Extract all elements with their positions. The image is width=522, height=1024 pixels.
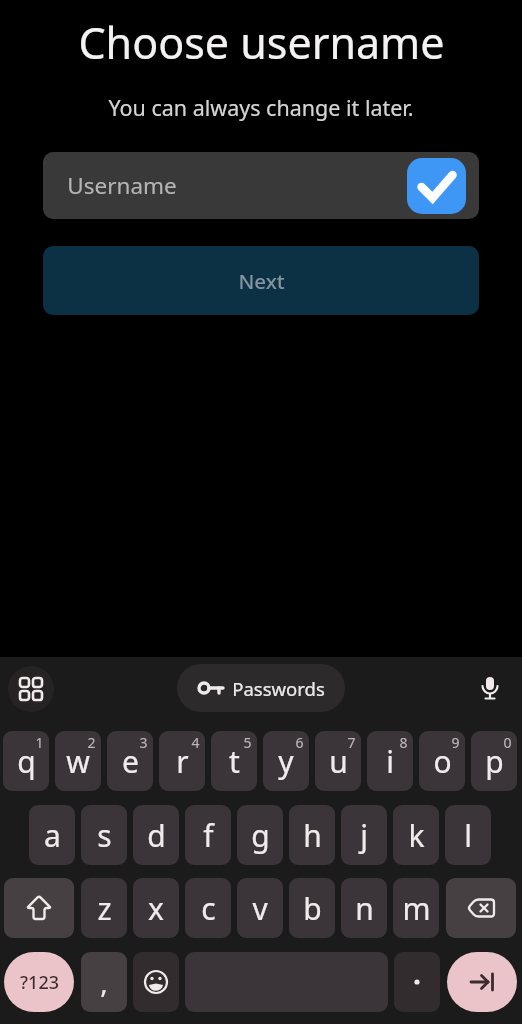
- staticText: p: [485, 741, 504, 782]
- staticText: 2: [87, 733, 96, 752]
- staticText: b: [303, 888, 322, 929]
- button[interactable]: p: [471, 731, 517, 791]
- staticText: i: [386, 741, 394, 782]
- button[interactable]: [446, 878, 516, 938]
- button[interactable]: m: [393, 878, 439, 938]
- button[interactable]: ?123: [4, 952, 74, 1012]
- staticText: l: [464, 815, 472, 856]
- staticText: w: [66, 741, 90, 782]
- button[interactable]: q: [3, 731, 49, 791]
- button[interactable]: r: [159, 731, 205, 791]
- staticText: o: [433, 741, 452, 782]
- button[interactable]: d: [133, 805, 179, 865]
- staticText: g: [251, 815, 270, 856]
- staticText: t: [229, 741, 240, 782]
- button[interactable]: w: [55, 731, 101, 791]
- button[interactable]: [470, 669, 510, 709]
- staticText: 5: [243, 733, 252, 752]
- staticText: h: [303, 815, 322, 856]
- staticText: 8: [399, 733, 408, 752]
- staticText: a: [44, 815, 61, 856]
- button[interactable]: z: [81, 878, 127, 938]
- staticText: k: [408, 815, 425, 856]
- button[interactable]: b: [289, 878, 335, 938]
- staticText: f: [203, 815, 214, 856]
- staticText: 3: [139, 733, 148, 752]
- staticText: m: [402, 888, 431, 929]
- button[interactable]: s: [81, 805, 127, 865]
- button[interactable]: f: [185, 805, 231, 865]
- button[interactable]: Username: [43, 152, 479, 219]
- button[interactable]: o: [419, 731, 465, 791]
- button[interactable]: y: [263, 731, 309, 791]
- staticText: Next: [238, 267, 285, 295]
- staticText: 6: [295, 733, 304, 752]
- staticText: c: [201, 888, 216, 929]
- staticText: You can always change it later.: [108, 93, 414, 122]
- staticText: n: [355, 888, 374, 929]
- staticText: s: [97, 815, 112, 856]
- staticText: Username: [67, 170, 177, 201]
- staticText: j: [360, 815, 368, 856]
- button[interactable]: [4, 878, 74, 938]
- button[interactable]: k: [393, 805, 439, 865]
- button[interactable]: [8, 666, 54, 712]
- button[interactable]: e: [107, 731, 153, 791]
- staticText: 7: [347, 733, 356, 752]
- staticText: y: [278, 741, 294, 782]
- staticText: 9: [451, 733, 460, 752]
- staticText: z: [97, 888, 112, 929]
- staticText: q: [17, 741, 36, 782]
- staticText: ,: [100, 963, 108, 1001]
- button[interactable]: a: [29, 805, 75, 865]
- button[interactable]: i: [367, 731, 413, 791]
- button[interactable]: u: [315, 731, 361, 791]
- staticText: Passwords: [232, 676, 325, 701]
- button[interactable]: v: [237, 878, 283, 938]
- staticText: 0: [503, 733, 512, 752]
- staticText: Choose username: [78, 13, 445, 72]
- button[interactable]: t: [211, 731, 257, 791]
- button[interactable]: [407, 158, 466, 214]
- staticText: v: [252, 888, 268, 929]
- staticText: r: [176, 741, 189, 782]
- button[interactable]: n: [341, 878, 387, 938]
- staticText: 4: [191, 733, 200, 752]
- button[interactable]: h: [289, 805, 335, 865]
- button[interactable]: [133, 952, 179, 1012]
- button[interactable]: l: [445, 805, 491, 865]
- staticText: u: [329, 741, 348, 782]
- button[interactable]: [447, 952, 517, 1012]
- button[interactable]: j: [341, 805, 387, 865]
- button[interactable]: [394, 952, 440, 1012]
- button[interactable]: Passwords: [177, 664, 345, 712]
- button[interactable]: c: [185, 878, 231, 938]
- staticText: e: [122, 741, 139, 782]
- button[interactable]: ,: [81, 952, 127, 1012]
- staticText: ?123: [20, 970, 59, 995]
- button[interactable]: x: [133, 878, 179, 938]
- button[interactable]: Next: [43, 246, 479, 315]
- staticText: d: [147, 815, 166, 856]
- button[interactable]: g: [237, 805, 283, 865]
- staticText: 1: [35, 733, 44, 752]
- staticText: x: [148, 888, 164, 929]
